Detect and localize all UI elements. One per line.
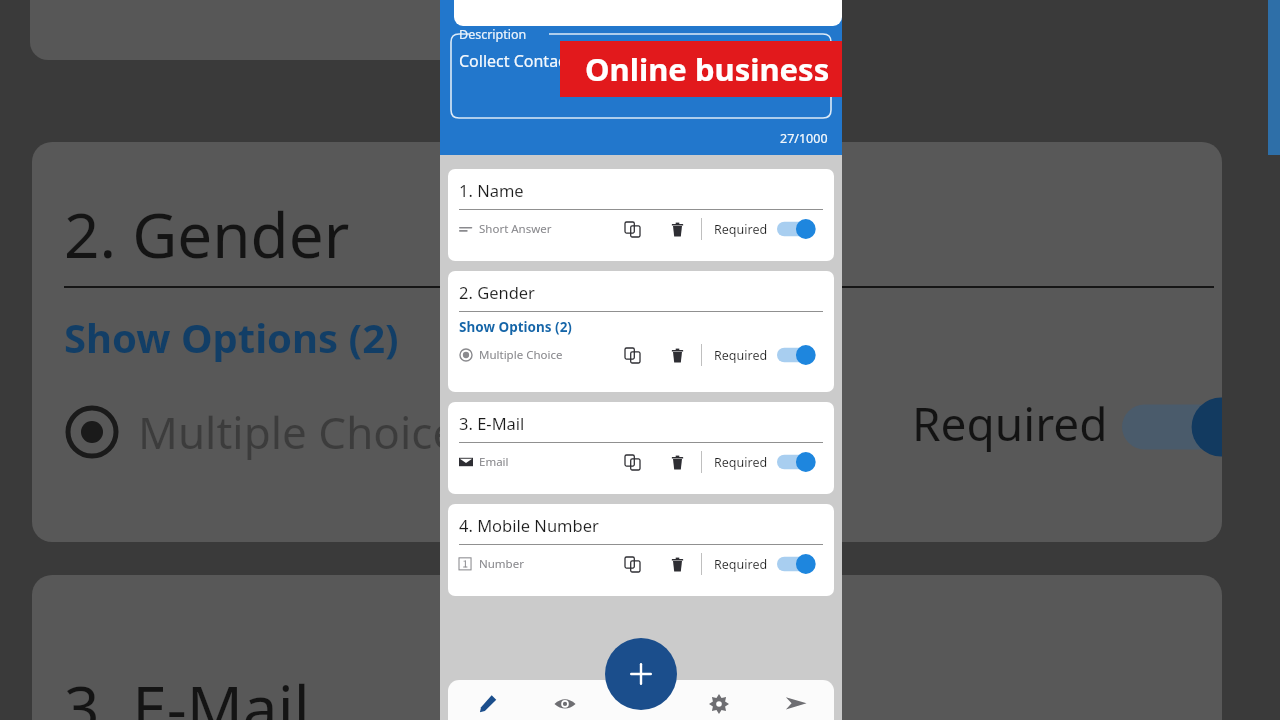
staticText: Required [714,454,768,471]
button[interactable]: Required [714,216,817,242]
staticText: Online business [585,48,830,90]
staticText: Required [714,221,768,238]
button[interactable]: Required toggle [777,449,817,475]
button[interactable]: Required toggle [777,216,817,242]
staticText: Description [459,26,527,43]
button[interactable]: 1. Name [448,169,834,261]
staticText: Required [912,392,1108,455]
button[interactable]: Show Options (2) [459,318,572,336]
button[interactable]: Description [451,34,831,118]
button[interactable] [454,0,842,26]
button[interactable]: Duplicate [619,216,645,242]
button[interactable]: Delete [664,551,690,577]
button[interactable]: Required [714,449,817,475]
button[interactable]: Required [714,551,817,577]
button[interactable]: Required toggle [777,342,817,368]
button[interactable]: Duplicate [619,342,645,368]
staticText: Number [479,556,524,572]
button[interactable]: Edit [448,694,526,720]
staticText: Show Options (2) [64,310,399,364]
button[interactable]: Preview [526,694,603,720]
button[interactable]: 4. Mobile Number [448,504,834,596]
staticText: Required [714,556,768,573]
button[interactable]: 3. E-Mail [448,402,834,494]
staticText: Short Answer [479,221,552,237]
staticText: 4. Mobile Number [459,514,599,536]
button[interactable]: Delete [664,449,690,475]
button[interactable]: Required [714,342,817,368]
staticText: Multiple Choice [138,402,458,462]
staticText: Multiple Choice [479,347,563,363]
staticText: 2. Gender [459,281,535,303]
button[interactable]: Delete [664,342,690,368]
button[interactable]: Duplicate [619,449,645,475]
staticText: Required [714,347,768,364]
staticText: 27/1000 [780,130,828,147]
button[interactable]: Delete [664,216,690,242]
button[interactable]: Required toggle [777,551,817,577]
button[interactable]: 2. Gender [448,271,834,392]
button[interactable]: Add field [605,638,677,710]
staticText: Email [479,454,509,470]
button[interactable]: Send [757,694,834,720]
button[interactable]: Duplicate [619,551,645,577]
button[interactable]: Settings [680,694,757,720]
staticText: 3. E-Mail [459,412,525,434]
staticText: 2. Gender [64,192,350,276]
staticText: 1. Name [459,179,524,201]
staticText: Collect Contact Information [459,50,667,72]
staticText: 3. E-Mail [64,665,310,720]
